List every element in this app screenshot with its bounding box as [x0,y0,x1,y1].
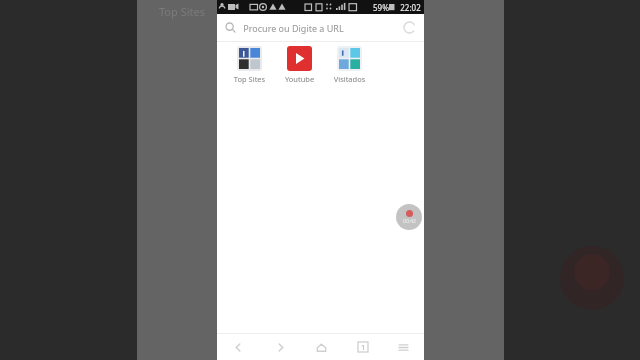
staticText: 59% [373,2,389,13]
button[interactable]: Menu [383,334,424,360]
staticText: Top Sites [159,4,205,19]
button[interactable]: Back [217,334,259,360]
staticText: 00:42 [403,218,416,225]
button[interactable]: Recording indicator [396,204,422,230]
button[interactable]: Forward [259,334,301,360]
button[interactable]: Home [301,334,342,360]
button[interactable]: Top Sites [229,46,270,84]
staticText: Procure ou Digite a URL [243,22,344,34]
staticText: Top Sites [229,74,270,84]
staticText: Visitados [329,74,370,84]
staticText: 1 [361,343,365,352]
button[interactable]: Tabs [342,334,383,360]
staticText: Youtube [279,74,320,84]
staticText: 22:02 [400,2,421,13]
button[interactable]: Youtube [279,46,320,84]
button[interactable]: Visitados [329,46,370,84]
button[interactable]: Reload [403,21,416,34]
button[interactable]: Procure ou Digite a URL [217,14,424,41]
